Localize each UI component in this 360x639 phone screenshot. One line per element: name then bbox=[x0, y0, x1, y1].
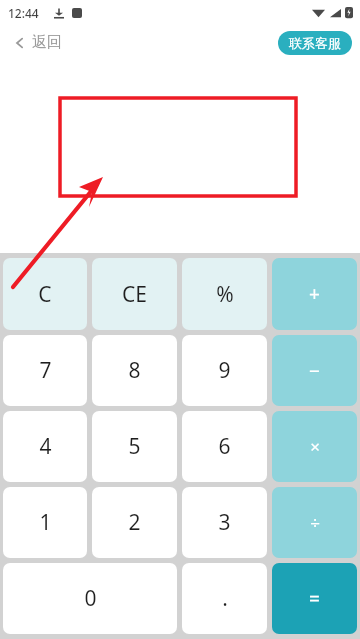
staticText: − bbox=[309, 358, 320, 384]
button[interactable]: ÷ bbox=[272, 487, 357, 558]
staticText: C bbox=[38, 280, 52, 309]
staticText: % bbox=[216, 280, 234, 309]
staticText: . bbox=[222, 584, 228, 613]
staticText: 6 bbox=[218, 432, 231, 461]
button[interactable]: 0 bbox=[3, 563, 177, 634]
button[interactable]: 返回 bbox=[10, 30, 66, 55]
staticText: 9 bbox=[218, 356, 231, 385]
button[interactable]: % bbox=[182, 258, 267, 330]
button[interactable]: 3 bbox=[182, 487, 267, 558]
button[interactable]: − bbox=[272, 335, 357, 406]
staticText: × bbox=[310, 435, 320, 458]
staticText: 返回 bbox=[32, 33, 62, 52]
button[interactable]: 9 bbox=[182, 335, 267, 406]
staticText: 0 bbox=[84, 584, 97, 613]
button[interactable]: 6 bbox=[182, 411, 267, 482]
staticText: 3 bbox=[218, 508, 231, 537]
staticText: 4 bbox=[39, 432, 52, 461]
button[interactable]: × bbox=[272, 411, 357, 482]
button[interactable]: 4 bbox=[3, 411, 87, 482]
staticText: CE bbox=[122, 280, 147, 309]
staticText: 联系客服 bbox=[289, 35, 341, 51]
staticText: 1 bbox=[39, 508, 52, 537]
button[interactable]: C bbox=[3, 258, 87, 330]
staticText: 7 bbox=[39, 356, 52, 385]
button[interactable]: = bbox=[272, 563, 357, 634]
button[interactable]: 7 bbox=[3, 335, 87, 406]
button[interactable]: 5 bbox=[92, 411, 177, 482]
button[interactable]: CE bbox=[92, 258, 177, 330]
staticText: 5 bbox=[128, 432, 141, 461]
staticText: + bbox=[309, 281, 320, 307]
button[interactable]: 8 bbox=[92, 335, 177, 406]
button[interactable]: 联系客服 bbox=[278, 31, 352, 55]
staticText: 12:44 bbox=[8, 5, 39, 21]
button[interactable]: . bbox=[182, 563, 267, 634]
button[interactable]: 1 bbox=[3, 487, 87, 558]
staticText: 2 bbox=[128, 508, 141, 537]
staticText: = bbox=[309, 586, 320, 612]
staticText: ÷ bbox=[310, 511, 320, 534]
button[interactable]: + bbox=[272, 258, 357, 330]
button[interactable]: 2 bbox=[92, 487, 177, 558]
staticText: 8 bbox=[128, 356, 141, 385]
